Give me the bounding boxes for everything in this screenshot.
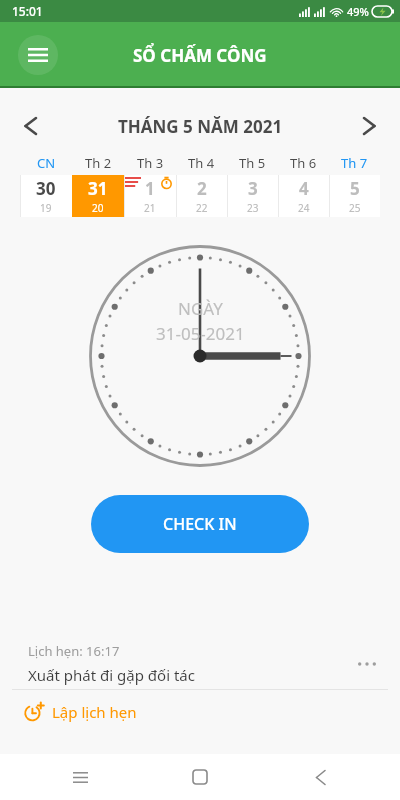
staticText: 4: [299, 177, 309, 200]
staticText: CHECK IN: [163, 513, 237, 535]
button[interactable]: 31: [72, 175, 124, 217]
staticText: 31: [88, 177, 108, 200]
button[interactable]: Menu: [18, 35, 58, 75]
button[interactable]: 2: [176, 175, 227, 217]
button[interactable]: Next month: [352, 108, 388, 144]
button[interactable]: Back: [300, 757, 340, 797]
staticText: 2: [197, 177, 207, 200]
staticText: CN: [37, 154, 56, 172]
staticText: 1: [145, 177, 155, 200]
button[interactable]: More options: [350, 647, 384, 681]
button[interactable]: 4: [278, 175, 329, 217]
button[interactable]: 5: [329, 175, 380, 217]
staticText: 3: [248, 177, 258, 200]
staticText: 24: [298, 201, 310, 215]
staticText: Th 7: [341, 154, 368, 172]
staticText: 23: [247, 201, 259, 215]
button[interactable]: 3: [227, 175, 278, 217]
staticText: 15:01: [12, 3, 43, 19]
staticText: 19: [40, 201, 52, 215]
staticText: Th 3: [137, 154, 164, 172]
staticText: Lịch hẹn: 16:17: [28, 642, 120, 660]
staticText: 20: [92, 201, 104, 215]
staticText: 49%: [347, 4, 369, 19]
staticText: Th 4: [188, 154, 215, 172]
staticText: 31-05-2021: [156, 322, 245, 345]
button[interactable]: Lập lịch hẹn: [0, 696, 400, 728]
staticText: 21: [144, 201, 156, 215]
staticText: Th 2: [85, 154, 112, 172]
staticText: THÁNG 5 NĂM 2021: [48, 115, 352, 138]
staticText: Lập lịch hẹn: [52, 702, 137, 722]
button[interactable]: Lịch hẹn: 16:17: [0, 638, 400, 689]
staticText: Th 6: [290, 154, 317, 172]
button[interactable]: 30: [20, 175, 72, 217]
staticText: Th 5: [239, 154, 266, 172]
button[interactable]: 1: [124, 175, 176, 217]
staticText: NGÀY: [178, 297, 223, 320]
staticText: 25: [349, 201, 361, 215]
staticText: Xuất phát đi gặp đối tác: [28, 665, 195, 685]
button[interactable]: Previous month: [12, 108, 48, 144]
button[interactable]: CHECK IN: [91, 495, 309, 553]
staticText: 5: [350, 177, 360, 200]
button[interactable]: Home: [180, 757, 220, 797]
staticText: 30: [36, 177, 56, 200]
button[interactable]: Recent apps: [60, 757, 100, 797]
staticText: SỔ CHẤM CÔNG: [133, 44, 267, 67]
staticText: 22: [196, 201, 208, 215]
